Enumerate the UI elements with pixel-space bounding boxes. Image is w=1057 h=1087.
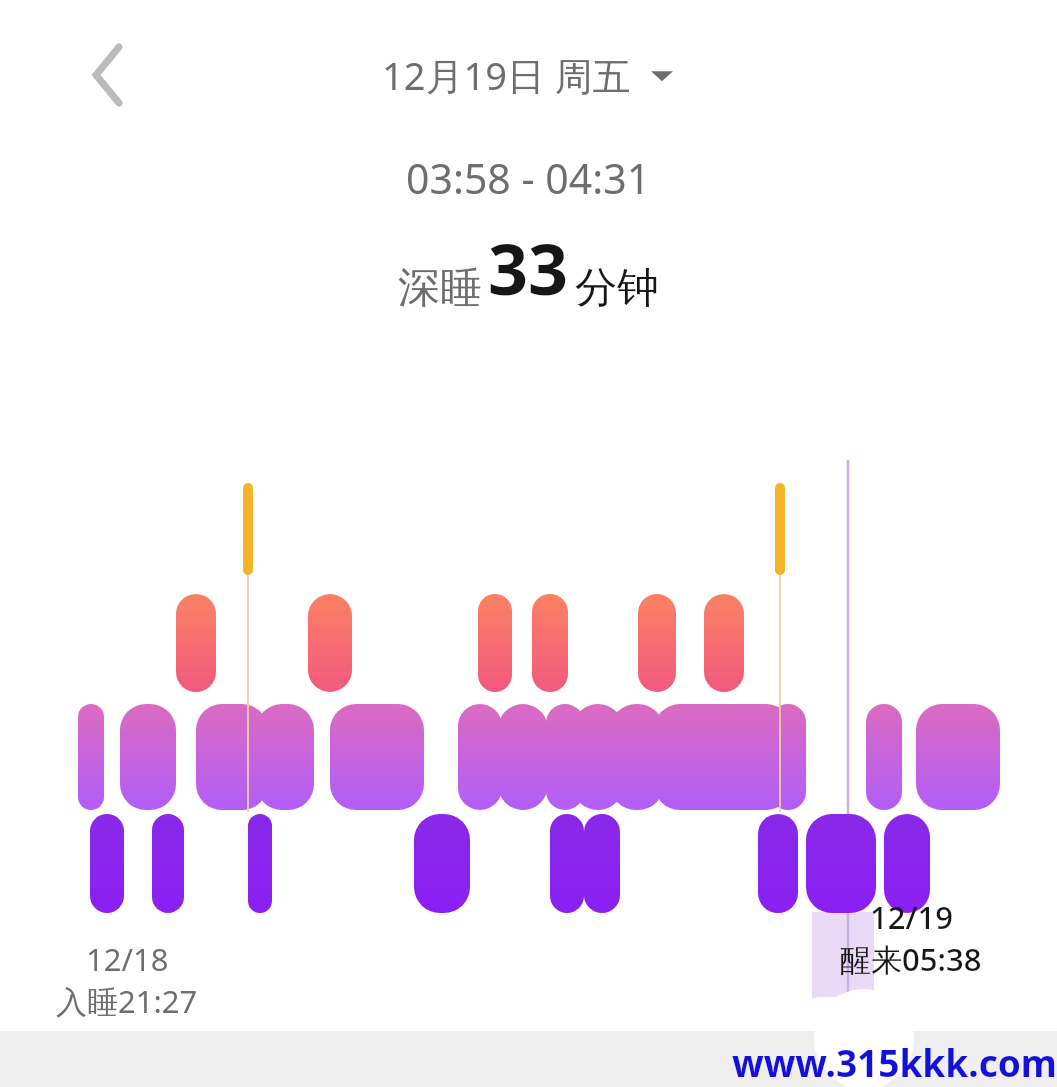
staticText: 12/18 [86,938,169,980]
staticText: 入睡21:27 [56,980,198,1022]
button[interactable]: 12月19日 周五 [382,49,675,101]
staticText: 深睡 [398,262,482,315]
staticText: 12/19 [870,896,953,938]
staticText: 33 [488,220,569,315]
staticText: 03:58 - 04:31 [406,150,651,206]
staticText: 醒来05:38 [840,938,982,980]
staticText: www.315kkk.com [732,1037,1057,1087]
staticText: 12月19日 周五 [382,49,631,101]
staticText: 分钟 [575,262,659,315]
button[interactable]: Back [72,39,144,111]
